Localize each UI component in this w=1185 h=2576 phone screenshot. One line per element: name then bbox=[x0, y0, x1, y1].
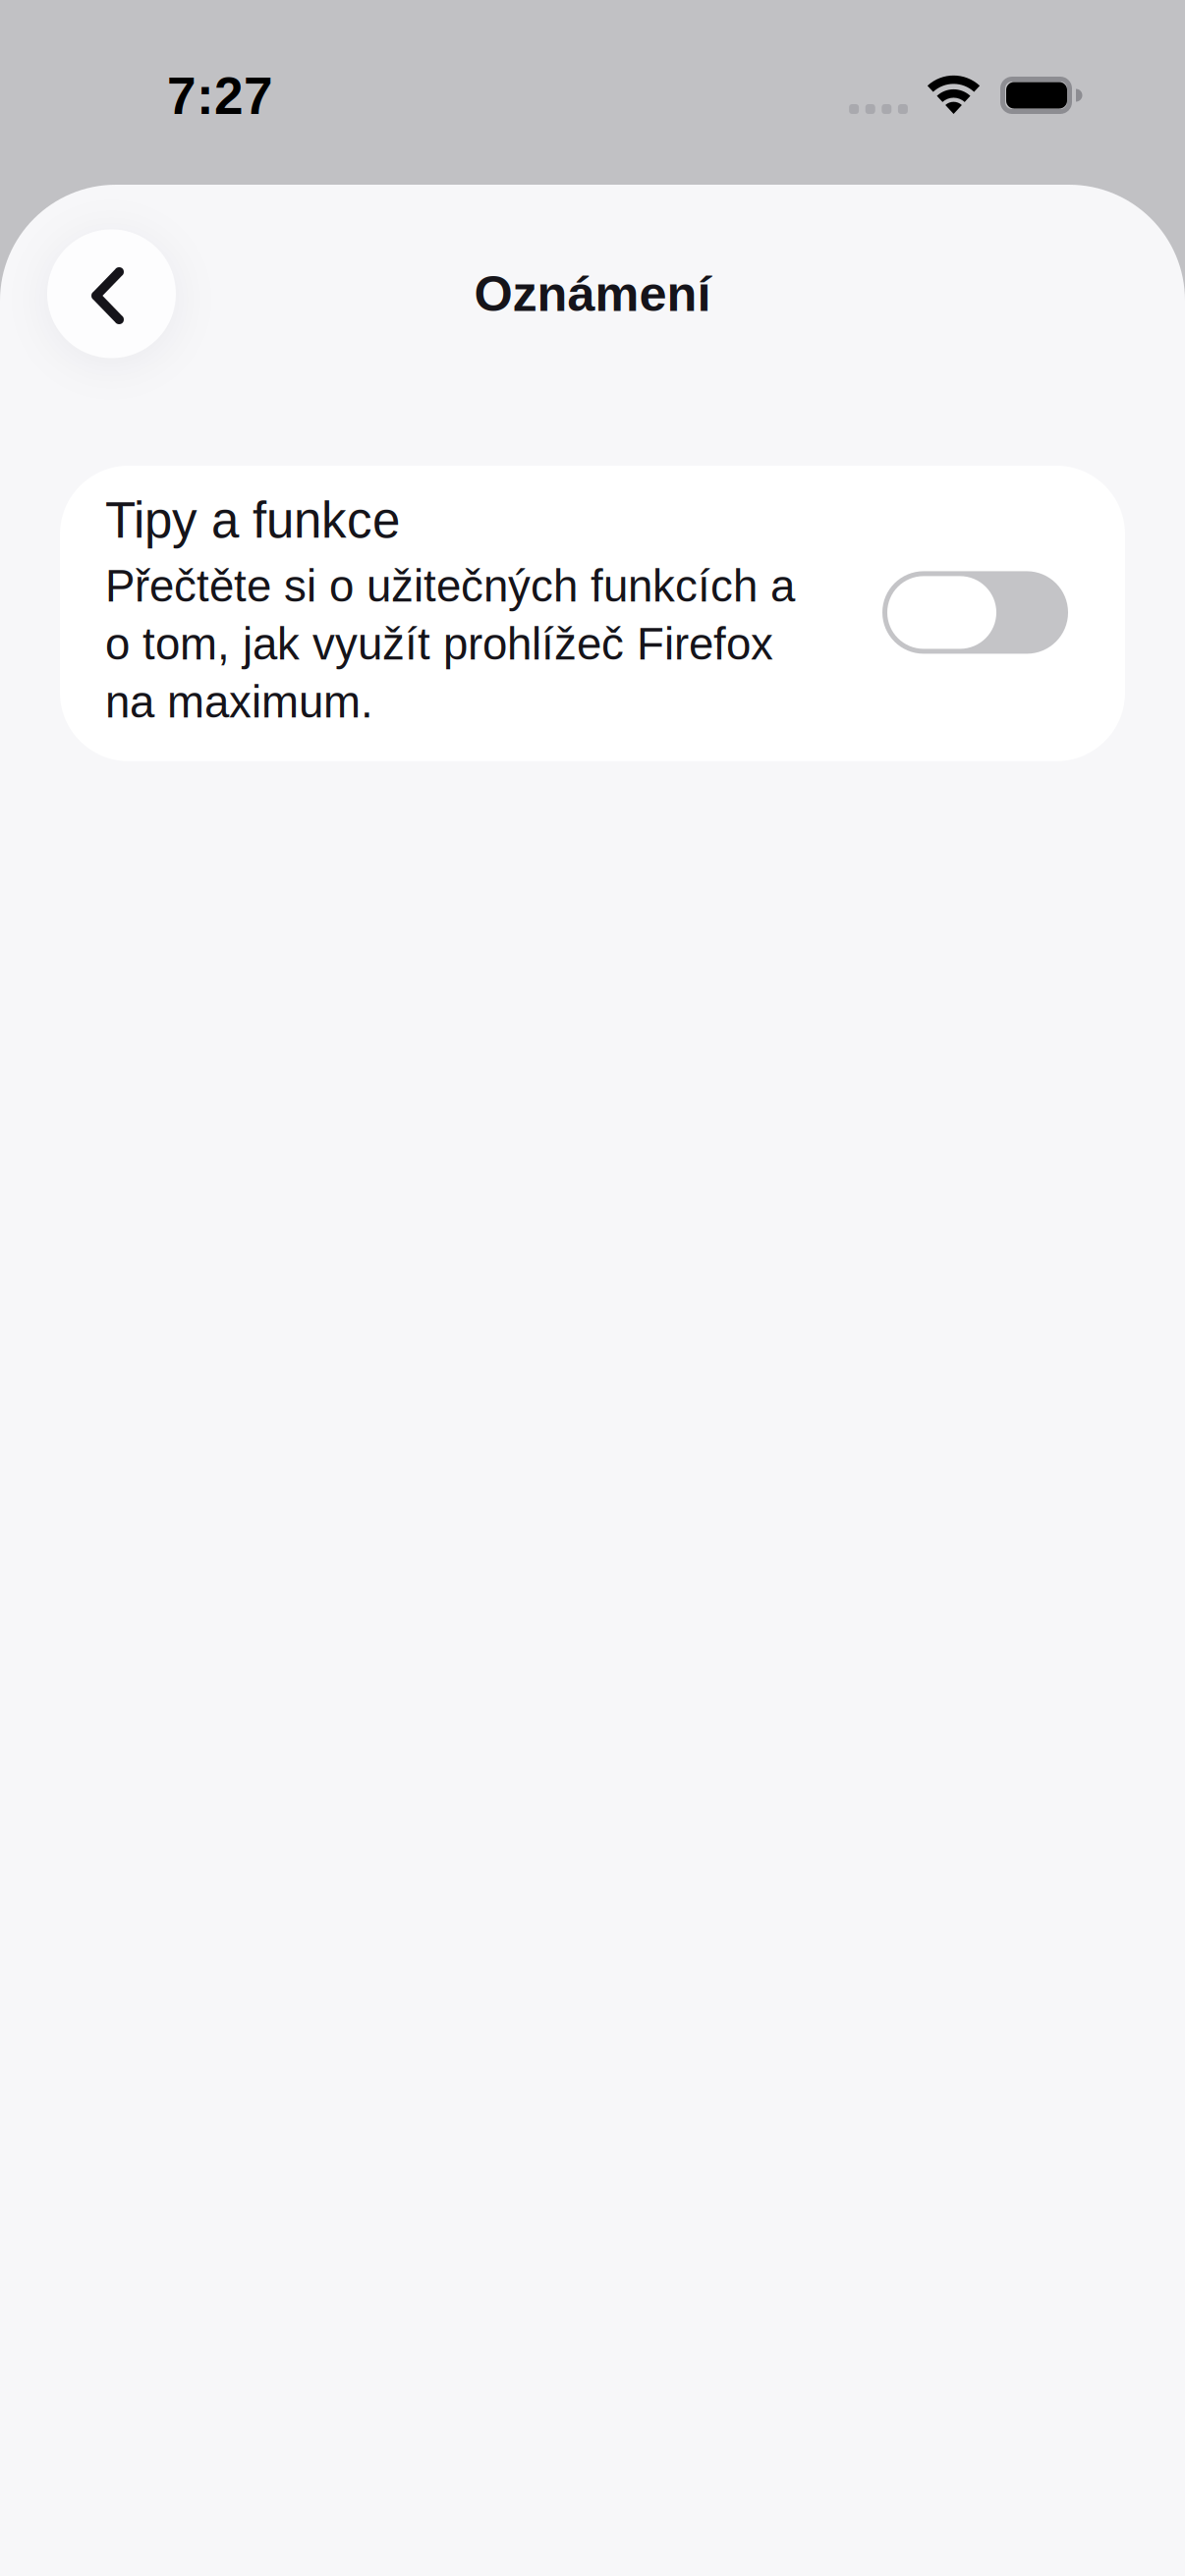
staticText: Přečtěte si o užitečných funkcích a o to… bbox=[105, 561, 795, 727]
staticText: Tipy a funkce bbox=[105, 492, 400, 548]
staticText: Oznámení bbox=[474, 266, 711, 321]
button[interactable]: Tipy a funkce bbox=[882, 571, 1068, 654]
button[interactable]: Back bbox=[47, 229, 176, 358]
staticText: 7:27 bbox=[167, 67, 273, 125]
